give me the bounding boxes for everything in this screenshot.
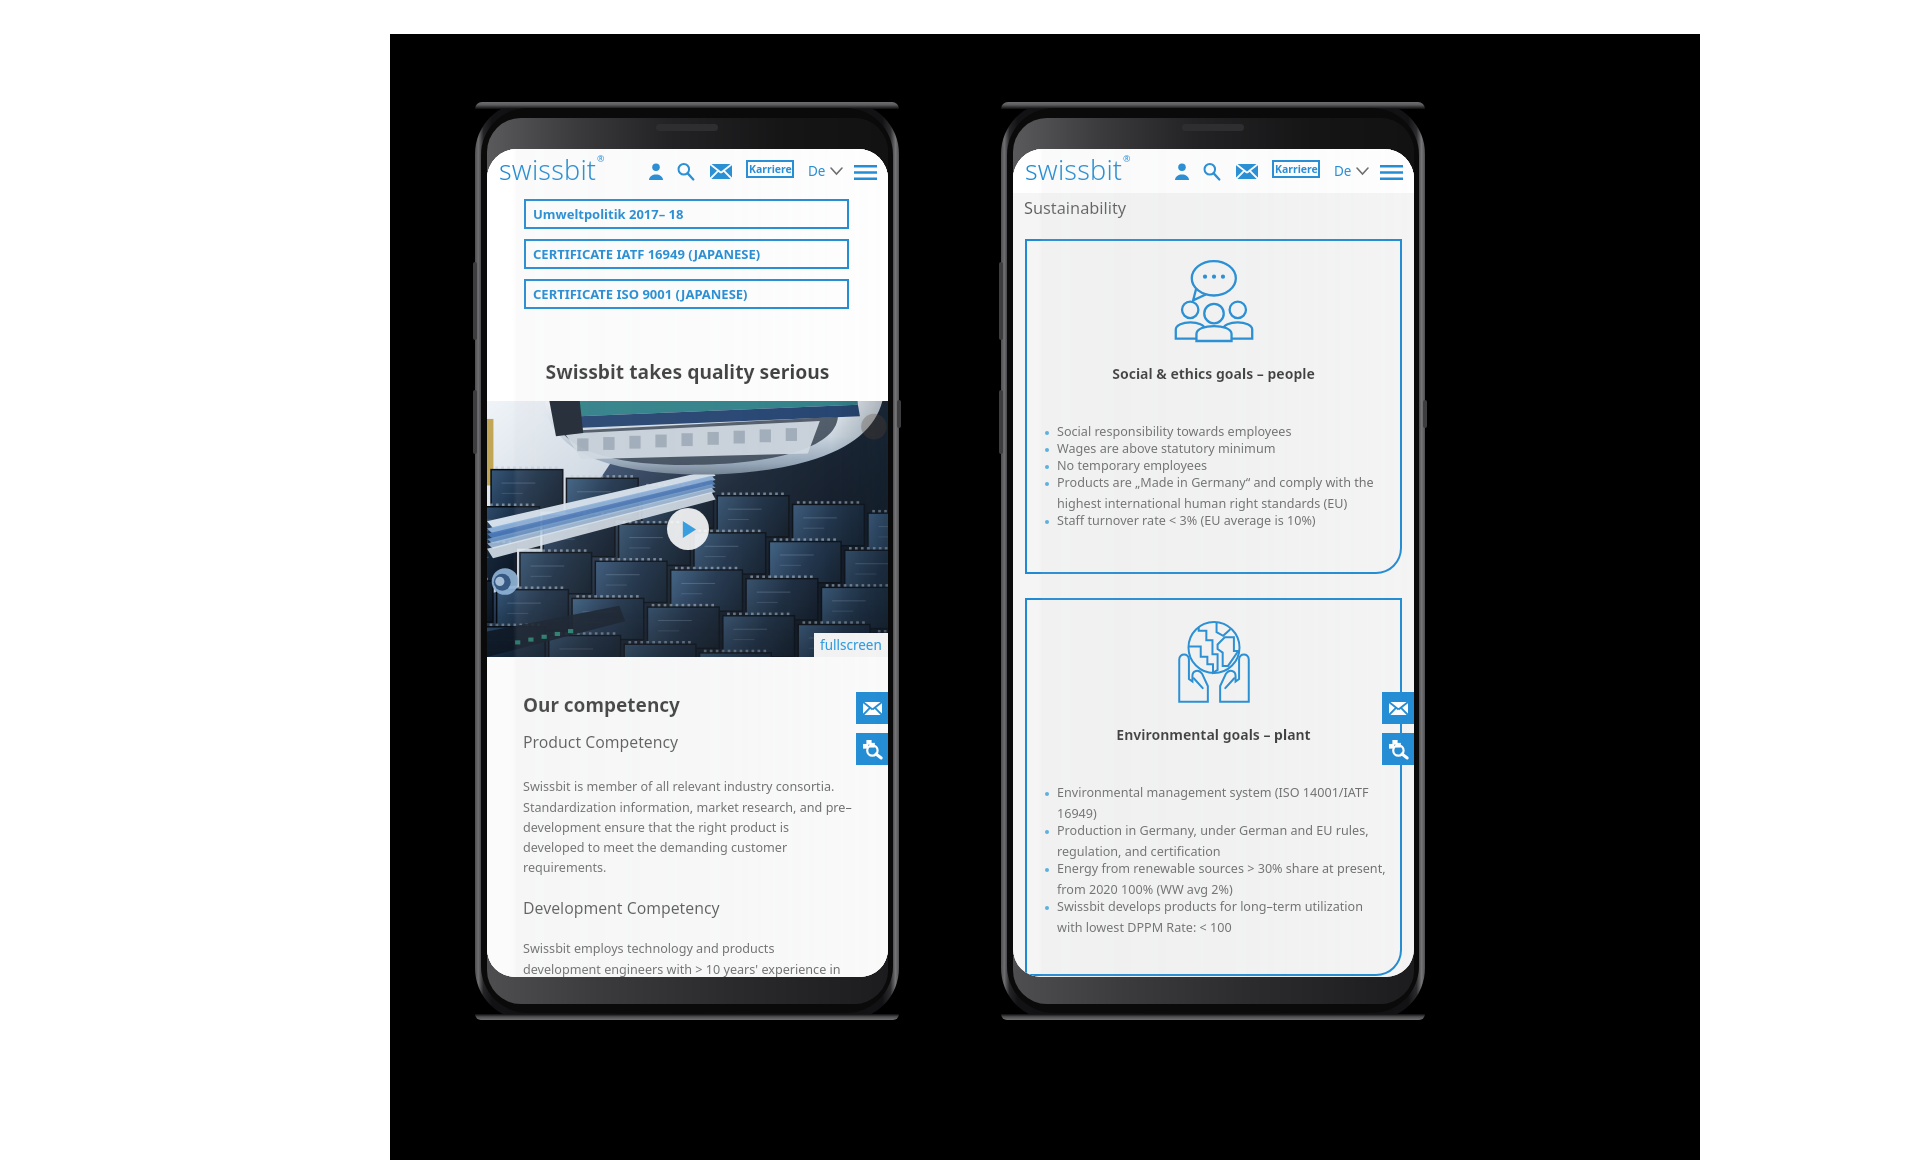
button[interactable]: My account bbox=[1174, 163, 1190, 180]
button[interactable]: Contact us bbox=[1382, 692, 1414, 724]
staticText: CERTIFICATE IATF 16949 (JAPANESE) bbox=[533, 245, 761, 263]
staticText: Our competency bbox=[523, 692, 680, 718]
button[interactable]: Play video bbox=[667, 508, 709, 550]
staticText: De bbox=[1334, 162, 1352, 180]
staticText: swissbit bbox=[1025, 151, 1123, 188]
button[interactable]: Menu bbox=[854, 165, 877, 180]
staticText: Swissbit develops products for long–term… bbox=[1057, 898, 1363, 936]
button[interactable]: fullscreen bbox=[814, 633, 888, 657]
button[interactable]: Menu bbox=[1380, 165, 1403, 180]
staticText: Social & ethics goals – people bbox=[1025, 364, 1402, 383]
staticText: Karriere bbox=[1275, 162, 1318, 176]
button[interactable]: Karriere bbox=[746, 160, 794, 178]
staticText: Umweltpolitik 2017– 18 bbox=[533, 205, 684, 223]
staticText: Social responsibility towards employees bbox=[1057, 423, 1292, 440]
button[interactable]: Contact bbox=[710, 164, 732, 179]
staticText: Energy from renewable sources > 30% shar… bbox=[1057, 860, 1386, 898]
button[interactable]: Karriere bbox=[1272, 160, 1320, 178]
staticText: CERTIFICATE ISO 9001 (JAPANESE) bbox=[533, 285, 748, 303]
button[interactable]: De bbox=[808, 162, 842, 180]
staticText: Wages are above statutory minimum bbox=[1057, 440, 1276, 457]
button[interactable]: CERTIFICATE IATF 16949 (JAPANESE) bbox=[524, 239, 849, 269]
button[interactable]: Product finder bbox=[1382, 733, 1414, 765]
staticText: Staff turnover rate < 3% (EU average is … bbox=[1057, 512, 1316, 529]
staticText: Swissbit employs technology and products… bbox=[523, 940, 841, 977]
staticText: Swissbit is member of all relevant indus… bbox=[523, 778, 852, 876]
staticText: No temporary employees bbox=[1057, 457, 1208, 474]
button[interactable]: Umweltpolitik 2017– 18 bbox=[524, 199, 849, 229]
staticText: Swissbit takes quality serious bbox=[487, 358, 888, 384]
staticText: ® bbox=[597, 152, 605, 164]
button[interactable]: Search bbox=[677, 163, 694, 180]
button[interactable]: Contact us bbox=[856, 692, 888, 724]
staticText: Products are „Made in Germany“ and compl… bbox=[1057, 474, 1374, 512]
staticText: Development Competency bbox=[523, 897, 720, 919]
staticText: De bbox=[808, 162, 826, 180]
staticText: Product Competency bbox=[523, 731, 679, 753]
button[interactable]: swissbit bbox=[1025, 151, 1131, 188]
button[interactable]: Social & ethics goals – people bbox=[1025, 239, 1402, 574]
button[interactable]: Environmental goals – plant bbox=[1025, 598, 1402, 976]
staticText: Environmental goals – plant bbox=[1025, 725, 1402, 744]
button[interactable]: De bbox=[1334, 162, 1368, 180]
button[interactable]: My account bbox=[648, 163, 664, 180]
button[interactable]: swissbit bbox=[499, 151, 605, 188]
staticText: Sustainability bbox=[1024, 197, 1127, 219]
staticText: swissbit bbox=[499, 151, 597, 188]
staticText: Karriere bbox=[749, 162, 792, 176]
staticText: fullscreen bbox=[820, 636, 882, 654]
staticText: Production in Germany, under German and … bbox=[1057, 822, 1369, 860]
staticText: Environmental management system (ISO 140… bbox=[1057, 784, 1369, 822]
button[interactable]: Product finder bbox=[856, 733, 888, 765]
button[interactable]: CERTIFICATE ISO 9001 (JAPANESE) bbox=[524, 279, 849, 309]
button[interactable]: Contact bbox=[1236, 164, 1258, 179]
staticText: ® bbox=[1123, 152, 1131, 164]
button[interactable]: Search bbox=[1203, 163, 1220, 180]
